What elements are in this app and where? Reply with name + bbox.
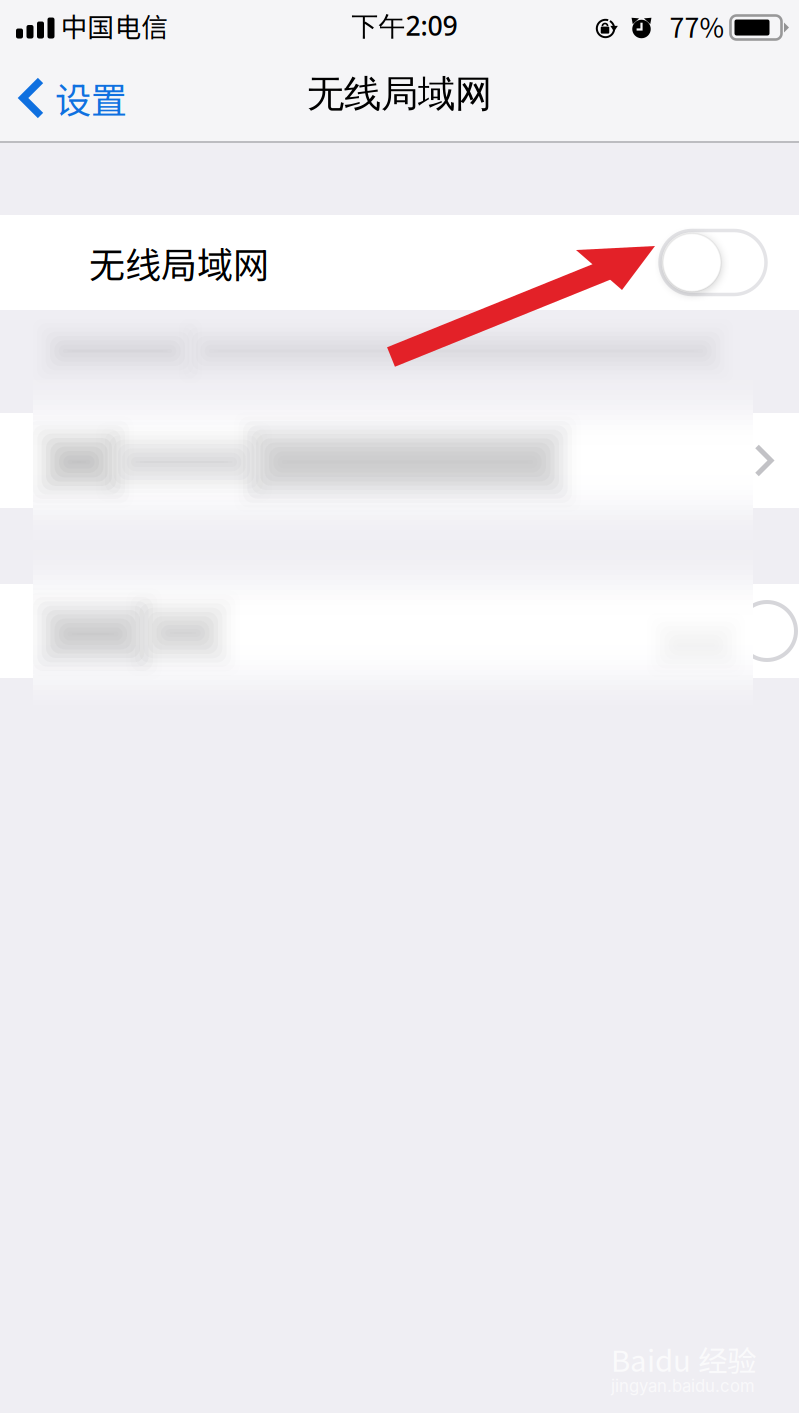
button[interactable]: 正在搜索网络 — [0, 584, 799, 678]
staticText: 77% — [669, 7, 724, 45]
staticText: 下午2:09 — [351, 7, 457, 44]
staticText: jingyan.baidu.com — [611, 1376, 755, 1396]
staticText: 中国电信 — [60, 6, 168, 45]
staticText: 无线局域网 — [89, 236, 269, 288]
staticText: 设置 — [55, 72, 127, 124]
button[interactable]: 已连接的网络 — [0, 413, 799, 508]
button[interactable]: 无线局域网 — [0, 215, 799, 310]
button[interactable]: 返回设置 — [0, 55, 143, 141]
staticText: Baidu 经验 — [611, 1338, 756, 1380]
staticText: 无线局域网 — [307, 70, 492, 117]
